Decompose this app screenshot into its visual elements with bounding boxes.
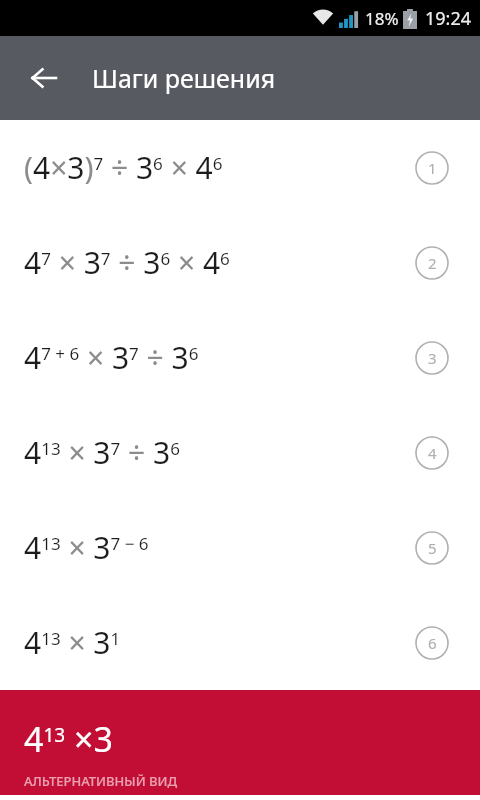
staticText: АЛЬТЕРНАТИВНЫЙ ВИД — [24, 772, 178, 790]
staticText: 4 — [428, 443, 437, 463]
button[interactable]: (4×3)7 ÷ 36 × 46 — [0, 120, 480, 215]
button[interactable]: 47 × 37 ÷ 36 × 46 — [0, 215, 480, 310]
staticText: 5 — [428, 538, 437, 558]
button[interactable]: 413 × 37 − 6 — [0, 500, 480, 595]
staticText: 413 × 37 − 6 — [24, 527, 149, 568]
staticText: (4×3)7 ÷ 36 × 46 — [24, 147, 223, 188]
button[interactable]: 413 ×3 — [0, 690, 480, 795]
staticText: 413 × 37 ÷ 36 — [24, 432, 180, 473]
staticText: 2 — [428, 253, 437, 273]
staticText: 3 — [428, 348, 437, 368]
staticText: 6 — [428, 633, 437, 653]
button[interactable]: 413 × 31 — [0, 595, 480, 690]
staticText: 1 — [428, 158, 437, 178]
button[interactable]: 47 + 6 × 37 ÷ 36 — [0, 310, 480, 405]
staticText: 413 ×3 — [24, 716, 113, 762]
button[interactable]: 413 × 37 ÷ 36 — [0, 405, 480, 500]
button[interactable]: Back — [20, 54, 68, 102]
staticText: 18% — [365, 7, 399, 30]
staticText: 47 + 6 × 37 ÷ 36 — [24, 337, 199, 378]
staticText: Шаги решения — [92, 61, 276, 95]
staticText: 47 × 37 ÷ 36 × 46 — [24, 242, 230, 283]
staticText: 413 × 31 — [24, 622, 121, 663]
staticText: 19:24 — [425, 6, 472, 31]
